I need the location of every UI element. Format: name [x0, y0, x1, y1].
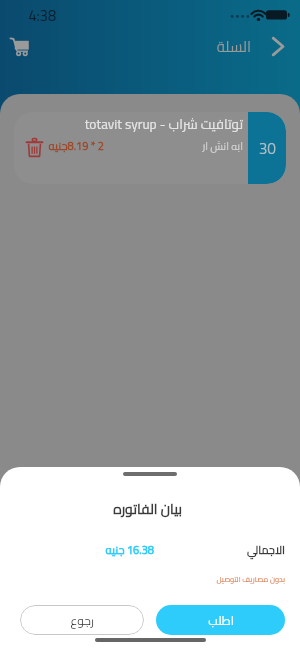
staticText: 2 * 8.19جنيه	[48, 136, 104, 157]
button[interactable]: Cart	[4, 30, 36, 62]
staticText: ابه انش ار	[202, 136, 243, 156]
button[interactable]: 30	[14, 112, 286, 184]
staticText: 4:38	[28, 2, 56, 28]
staticText: توتافيت شراب - totavit syrup	[84, 112, 243, 136]
other: Back	[272, 37, 284, 56]
button[interactable]: رجوع	[20, 605, 144, 635]
button[interactable]: اطلب	[156, 605, 285, 635]
staticText: رجوع	[70, 609, 94, 631]
staticText: بيان الفاتوره	[113, 496, 182, 522]
staticText: بدون مصاريف التوصيل	[216, 572, 285, 586]
staticText: الاجمالي	[246, 540, 285, 561]
button[interactable]: 30	[248, 112, 286, 184]
button[interactable]: Delete	[22, 135, 46, 159]
staticText: اطلب	[208, 609, 234, 631]
staticText: السلة	[216, 32, 251, 60]
button[interactable]: السلة	[216, 32, 284, 60]
staticText: 16.38 جنيه	[105, 540, 154, 561]
staticText: 30	[258, 134, 276, 163]
